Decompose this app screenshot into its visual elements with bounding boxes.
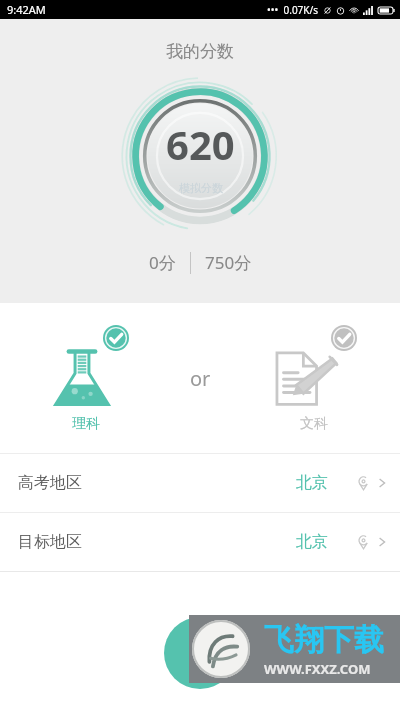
staticText: 模拟分数 (179, 181, 223, 195)
staticText: 750分 (205, 251, 252, 274)
staticText: or (190, 365, 211, 392)
staticText: 620 (166, 117, 235, 171)
button[interactable]: 目标地区 (0, 513, 400, 571)
staticText: 北京 (296, 532, 328, 552)
staticText: 目标地区 (18, 532, 82, 552)
button[interactable]: 理科 (0, 303, 172, 454)
button[interactable]: 高考地区 (0, 454, 400, 512)
staticText: 理科 (72, 415, 100, 433)
staticText: WWW.FXXZ.COM (264, 660, 371, 678)
button[interactable]: 开始 (164, 617, 236, 689)
staticText: 9:42AM (7, 2, 46, 17)
staticText: 高考地区 (18, 473, 82, 493)
staticText: 北京 (296, 473, 328, 493)
button[interactable]: 620 (121, 77, 279, 235)
staticText: 飞翔下载 (264, 621, 384, 659)
button[interactable]: 文科 (228, 303, 400, 454)
staticText: 文科 (300, 415, 328, 433)
staticText: 我的分数 (166, 41, 234, 62)
staticText: 0分 (149, 251, 176, 274)
staticText: ••• 0.07K/s (267, 3, 319, 17)
